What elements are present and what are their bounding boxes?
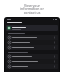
- button[interactable]: [6, 35, 58, 40]
- staticText: View your information or contact us: [6, 3, 58, 15]
- button[interactable]: [6, 54, 58, 59]
- button[interactable]: [6, 64, 58, 69]
- button[interactable]: [6, 40, 58, 45]
- button[interactable]: [6, 25, 58, 31]
- button[interactable]: [6, 59, 58, 64]
- button[interactable]: [6, 45, 58, 50]
